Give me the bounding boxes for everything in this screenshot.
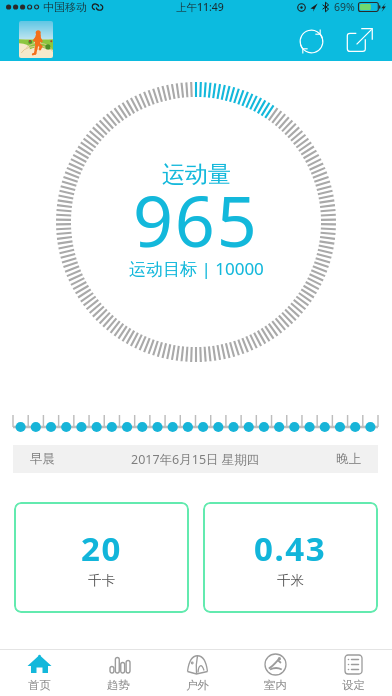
staticText: 早晨 bbox=[30, 451, 55, 467]
button[interactable]: 0.43 bbox=[203, 502, 378, 613]
staticText: 运动目标 | 10000 bbox=[129, 257, 264, 280]
button[interactable]: Share bbox=[342, 24, 376, 58]
button[interactable]: 20 bbox=[14, 502, 189, 613]
staticText: 首页 bbox=[28, 678, 51, 692]
button[interactable]: 户外 bbox=[158, 650, 236, 696]
staticText: 2017年6月15日 星期四 bbox=[131, 451, 260, 468]
staticText: 设定 bbox=[342, 678, 365, 692]
button[interactable]: App icon bbox=[19, 21, 53, 58]
button[interactable]: 设定 bbox=[314, 650, 392, 696]
button[interactable]: 室内 bbox=[236, 650, 314, 696]
staticText: 0.43 bbox=[254, 526, 327, 571]
staticText: 户外 bbox=[186, 678, 209, 692]
staticText: 20 bbox=[81, 526, 122, 571]
staticText: 趋势 bbox=[107, 678, 130, 692]
staticText: 晚上 bbox=[336, 451, 361, 467]
button[interactable]: 首页 bbox=[0, 650, 79, 696]
staticText: 千米 bbox=[277, 572, 304, 589]
staticText: 室内 bbox=[264, 678, 287, 692]
staticText: 千卡 bbox=[88, 572, 115, 589]
staticText: 69% bbox=[334, 0, 355, 14]
staticText: 中国移动 bbox=[43, 0, 87, 14]
button[interactable]: 趋势 bbox=[79, 650, 158, 696]
staticText: 上午11:49 bbox=[176, 0, 224, 14]
staticText: 965 bbox=[133, 172, 259, 267]
staticText: 运动量 bbox=[162, 160, 231, 189]
button[interactable]: Refresh bbox=[294, 24, 328, 58]
